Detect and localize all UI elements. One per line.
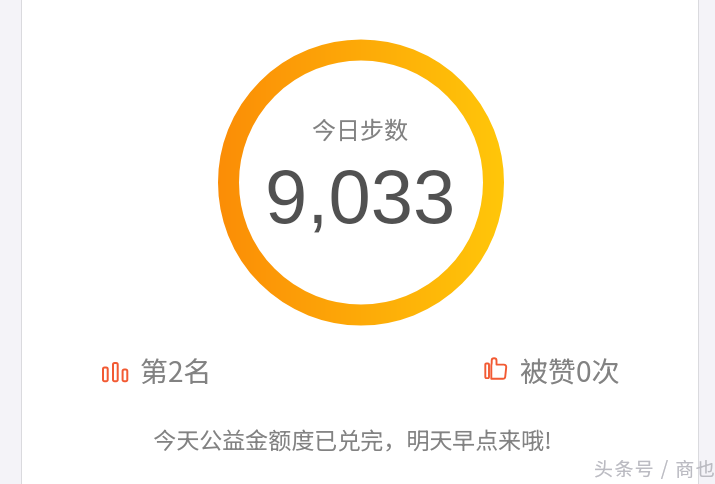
staticText: 头条号 / 商也 xyxy=(594,454,715,482)
staticText: 第2名 xyxy=(140,350,212,391)
staticText: 今日步数 xyxy=(312,111,408,146)
other: Likes xyxy=(477,350,507,384)
button[interactable]: Ranking xyxy=(96,350,212,391)
button[interactable]: Likes xyxy=(477,350,620,391)
staticText: 被赞0次 xyxy=(520,350,620,391)
other: Ranking xyxy=(96,350,132,384)
staticText: 9,033 xyxy=(265,154,456,239)
staticText: 今天公益金额度已兑完，明天早点来哦! xyxy=(153,422,552,455)
